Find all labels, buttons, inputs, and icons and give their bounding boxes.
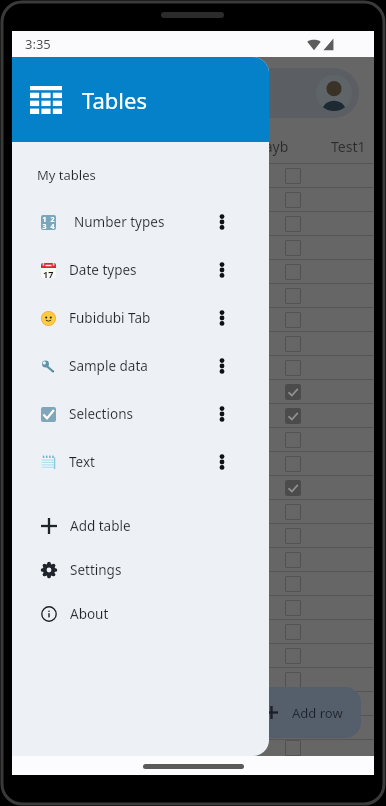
staticText: Number types	[74, 213, 165, 231]
button[interactable]: Toggle row 23	[285, 696, 301, 712]
button[interactable]: 1	[12, 198, 269, 246]
button[interactable]: Toggle row 22	[285, 672, 301, 688]
button[interactable]: Toggle row 3	[285, 216, 301, 232]
button[interactable]: Toggle row 9	[285, 360, 301, 376]
staticText: Mayb	[252, 137, 289, 156]
staticText: Date types	[69, 261, 137, 279]
staticText: My tables	[37, 166, 96, 184]
button[interactable]: Toggle row 1	[285, 168, 301, 184]
button[interactable]: Text	[12, 438, 269, 486]
staticText: 2	[50, 215, 55, 222]
button[interactable]: Toggle row 15	[285, 504, 301, 520]
staticText: Tables	[82, 85, 147, 115]
button[interactable]: More options	[204, 252, 240, 288]
staticText: Fubidubi Tab	[69, 309, 151, 327]
button[interactable]: Fubidubi Tab	[12, 294, 269, 342]
button[interactable]: Toggle row 11	[285, 408, 301, 424]
staticText: Add table	[70, 517, 131, 535]
button[interactable]: Add row	[249, 687, 361, 738]
button[interactable]: Toggle row 2	[285, 192, 301, 208]
button[interactable]: Toggle row 8	[285, 336, 301, 352]
button[interactable]: Toggle row 4	[285, 240, 301, 256]
button[interactable]: Toggle row 14	[285, 480, 301, 496]
staticText: 1	[42, 215, 47, 222]
button[interactable]: Toggle row 18	[285, 576, 301, 592]
button[interactable]: More options	[204, 204, 240, 240]
button[interactable]: Toggle row 25	[285, 740, 301, 756]
button[interactable]: Sample data	[12, 342, 269, 390]
button[interactable]: Toggle row 5	[285, 264, 301, 280]
button[interactable]: Toggle row 13	[285, 456, 301, 472]
button[interactable]: Toggle row 6	[285, 288, 301, 304]
button[interactable]: Toggle row 20	[285, 624, 301, 640]
button[interactable]: Settings	[12, 548, 269, 592]
button[interactable]: More options	[204, 444, 240, 480]
staticText: Add row	[292, 704, 343, 722]
button[interactable]: Toggle row 17	[285, 552, 301, 568]
button[interactable]: Selections	[12, 390, 269, 438]
button[interactable]: More options	[204, 396, 240, 432]
staticText: 3:35	[25, 35, 51, 53]
button[interactable]: 17	[12, 246, 269, 294]
staticText: Text	[69, 453, 95, 471]
staticText: Test1	[331, 137, 366, 156]
staticText: About	[70, 605, 109, 623]
staticText: Sample data	[69, 357, 148, 375]
button[interactable]: Toggle row 16	[285, 528, 301, 544]
button[interactable]: Add table	[12, 504, 269, 548]
button[interactable]: Tables	[12, 57, 269, 142]
staticText: 3	[42, 222, 47, 230]
button[interactable]: Toggle row 21	[285, 648, 301, 664]
staticText: Selections	[69, 405, 133, 423]
button[interactable]: Toggle row 10	[285, 384, 301, 400]
button[interactable]: About	[12, 592, 269, 636]
button[interactable]: More options	[204, 300, 240, 336]
staticText: Settings	[70, 561, 122, 579]
staticText: 4	[50, 222, 55, 230]
staticText: 17	[43, 268, 54, 278]
button[interactable]: More options	[204, 348, 240, 384]
button[interactable]: Toggle row 19	[285, 600, 301, 616]
button[interactable]: Search	[27, 68, 359, 118]
button[interactable]: Toggle row 7	[285, 312, 301, 328]
button[interactable]: Toggle row 12	[285, 432, 301, 448]
